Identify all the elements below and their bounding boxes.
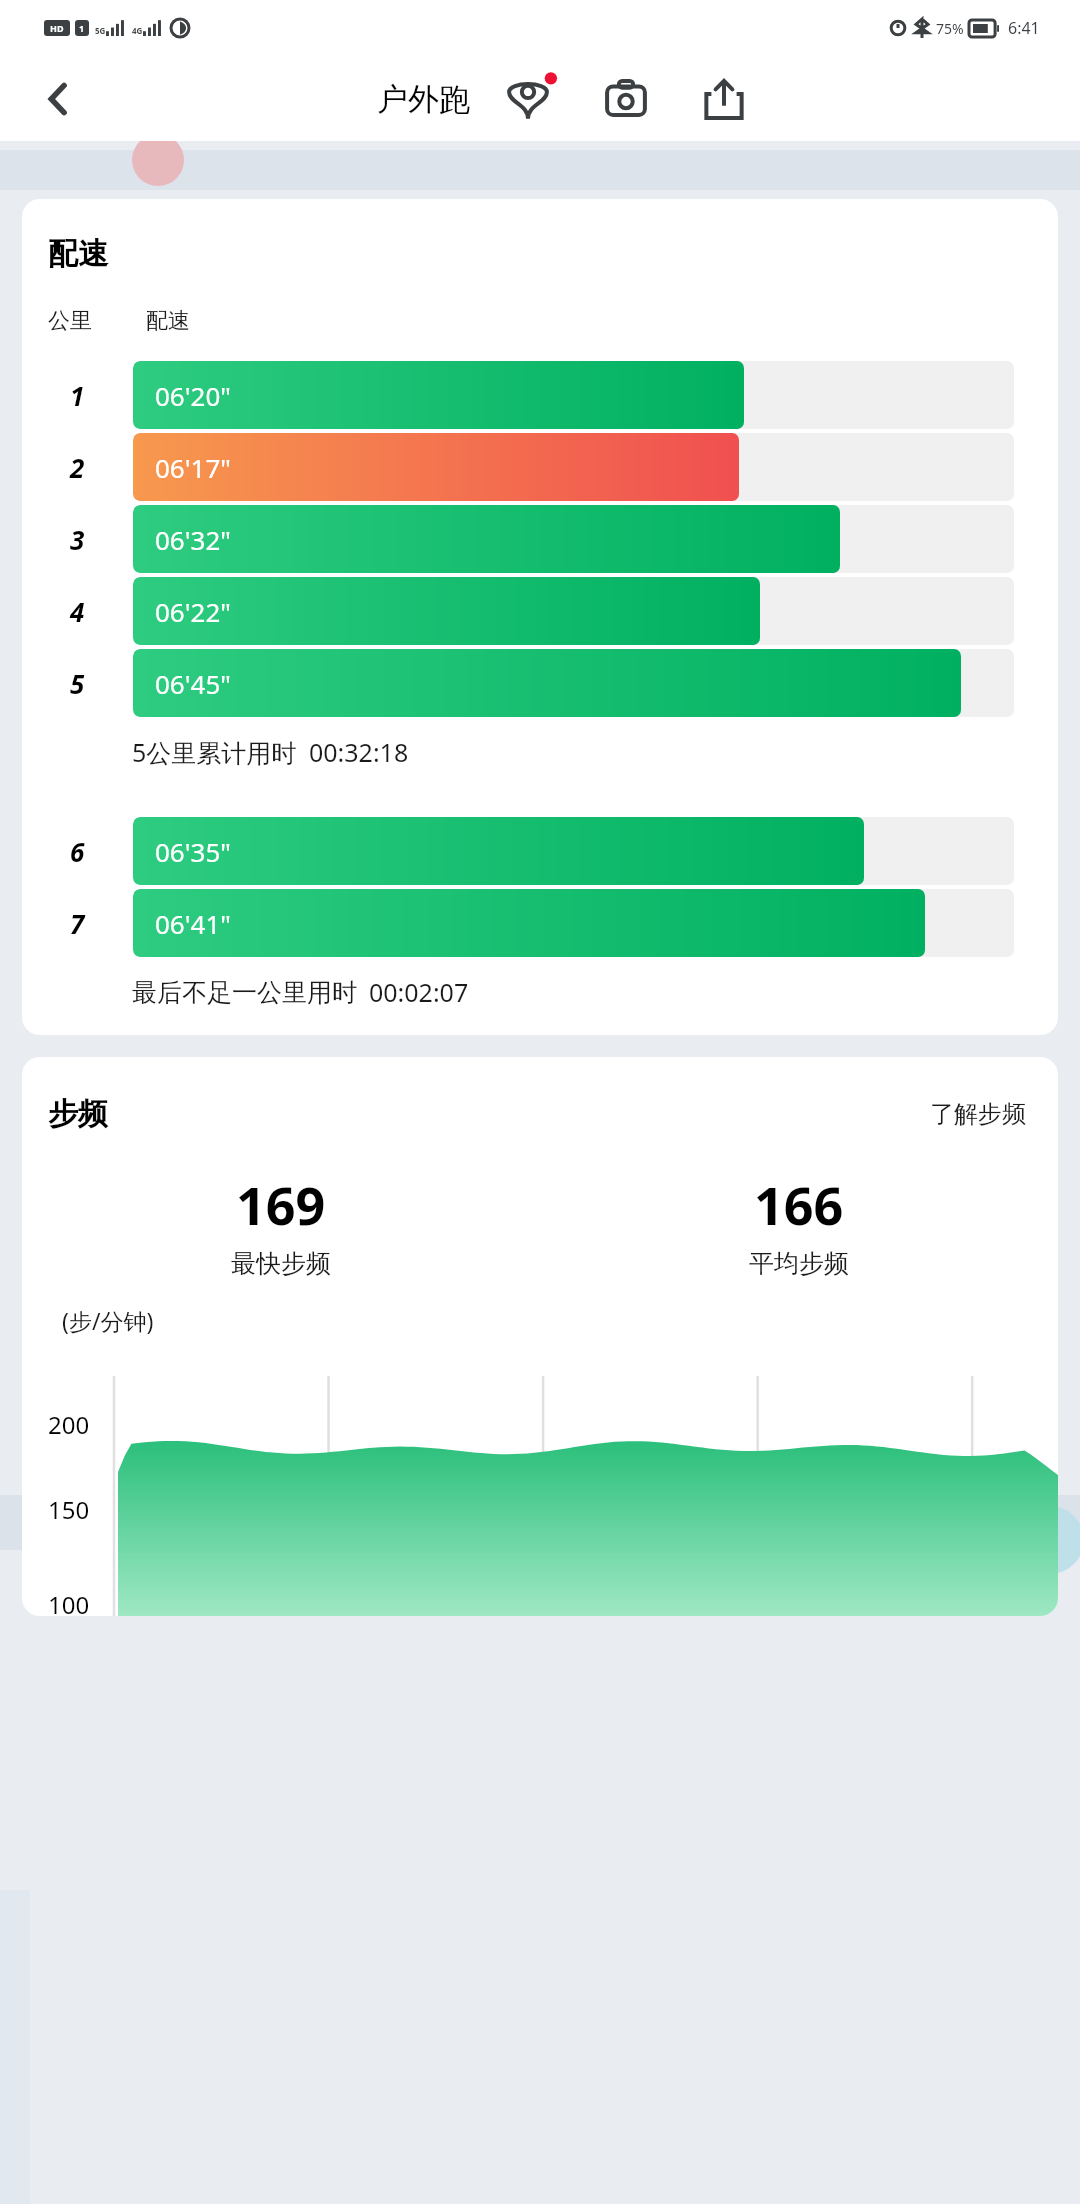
button[interactable]: 3 [22,503,1058,575]
staticText: 00:02:07 [369,975,469,1009]
staticText: 5公里累计用时 [132,735,297,769]
button[interactable]: 1 [22,359,1058,431]
staticText: 5 [70,666,85,701]
staticText: HD [50,22,64,34]
staticText: 步频 [48,1095,108,1133]
staticText: 06'35" [155,834,231,869]
staticText: 公里 [48,307,92,335]
staticText: 最快步频 [231,1248,331,1279]
staticText: 4G [132,25,143,36]
staticText: 169 [236,1169,326,1240]
staticText: 户外跑 [377,80,470,119]
staticText: 2 [70,450,85,485]
button[interactable]: 4 [22,575,1058,647]
staticText: 配速 [146,307,190,335]
staticText: 4 [70,594,85,629]
staticText: 06'20" [155,378,231,413]
staticText: (步/分钟) [62,1305,154,1336]
staticText: 5G [95,25,106,36]
button[interactable]: 5 [22,647,1058,719]
staticText: 3 [70,522,85,557]
button[interactable]: 了解步频 [924,1093,1032,1135]
button[interactable]: Share [688,63,760,135]
button[interactable]: Map [492,63,564,135]
button[interactable]: Back [22,63,94,135]
staticText: 最后不足一公里用时 [132,977,357,1008]
staticText: 100 [48,1588,90,1616]
staticText: 06'45" [155,666,231,701]
staticText: 06'17" [155,450,231,485]
staticText: 06'32" [155,522,231,557]
staticText: 1 [70,378,85,413]
button[interactable]: 2 [22,431,1058,503]
staticText: 6:41 [1008,17,1040,39]
button[interactable]: 6 [22,815,1058,887]
staticText: 150 [48,1493,90,1526]
staticText: 了解步频 [930,1099,1026,1129]
staticText: 1 [79,22,85,34]
staticText: 06'22" [155,594,231,629]
staticText: 6 [70,834,85,869]
staticText: 7 [70,906,85,941]
staticText: 平均步频 [749,1248,849,1279]
staticText: 166 [754,1169,844,1240]
staticText: 配速 [48,235,108,273]
button[interactable]: 7 [22,887,1058,959]
staticText: 75% [936,19,964,38]
staticText: 06'41" [155,906,231,941]
staticText: 00:32:18 [309,735,409,769]
staticText: 200 [48,1408,90,1441]
button[interactable]: Camera [590,63,662,135]
